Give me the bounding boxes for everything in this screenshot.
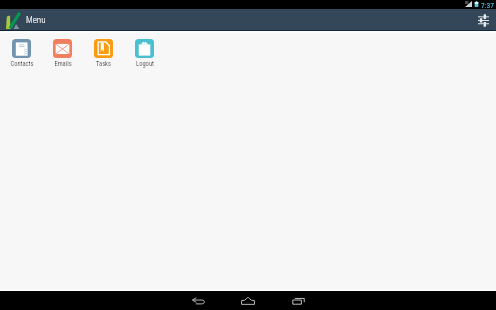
button[interactable]: Contacts	[1, 39, 42, 68]
button[interactable]: Recents	[278, 291, 318, 310]
staticText: 7:37	[481, 1, 494, 10]
button[interactable]: Home	[228, 291, 268, 310]
button[interactable]: Settings	[473, 10, 494, 31]
staticText: Tasks	[96, 60, 111, 68]
staticText: Menu	[26, 15, 46, 26]
staticText: Emails	[54, 60, 72, 68]
button[interactable]: Back	[178, 291, 218, 310]
button[interactable]: Logout	[124, 39, 165, 68]
staticText: Logout	[136, 60, 154, 68]
button[interactable]: Tasks	[83, 39, 124, 68]
button[interactable]: Emails	[42, 39, 83, 68]
staticText: Contacts	[10, 60, 34, 68]
